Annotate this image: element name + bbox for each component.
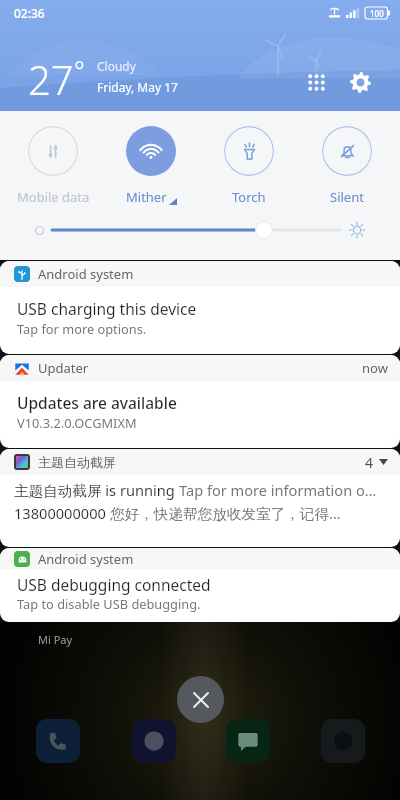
button[interactable]: 主题自动截屏 [0,449,400,547]
staticText: Tap for more information o… [179,480,377,500]
button[interactable]: Settings [342,64,378,100]
button[interactable]: Android system [0,261,400,354]
staticText: Android system [38,550,134,568]
staticText: V10.3.2.0.OCGMIXM [17,414,137,431]
staticText: Updates are available [17,392,177,413]
staticText: 27 [28,52,74,106]
staticText: 02:36 [14,5,45,21]
button[interactable]: Android system [0,548,400,622]
staticText: Tap for more options. [17,320,147,337]
button[interactable]: Mither [102,126,200,206]
button[interactable]: Silent [298,126,396,206]
staticText: Mi Pay [38,632,73,647]
staticText: Updater [38,359,89,377]
staticText: 您好，快递帮您放收发室了，记得… [110,503,341,523]
button[interactable]: App shortcut [36,719,80,763]
button[interactable]: Mobile data [4,126,102,206]
button[interactable]: App shortcut [321,719,365,763]
staticText: Cloudy [97,58,136,74]
staticText: 主题自动截屏 [38,454,116,470]
button[interactable]: App shortcut [132,719,176,763]
button[interactable]: App shortcut [226,719,270,763]
staticText: Android system [38,265,134,283]
button[interactable]: Updater [0,355,400,448]
staticText: 4 [365,453,374,472]
staticText: Silent [330,188,364,206]
staticText: Mither [126,188,167,206]
staticText: 13800000000 [14,503,110,523]
staticText: Mobile data [17,188,90,206]
staticText: USB debugging connected [17,574,211,595]
staticText: now [362,359,388,377]
button[interactable]: Shortcuts [298,64,334,100]
button[interactable]: Close notification shade [177,676,224,723]
button[interactable]: Torch [200,126,298,206]
staticText: Torch [232,188,266,206]
staticText: 100 [370,8,384,19]
staticText: Tap to disable USB debugging. [17,595,201,612]
staticText: USB charging this device [17,298,197,319]
staticText: ° [74,53,85,87]
staticText: 主题自动截屏 is running [14,480,179,500]
staticText: Friday, May 17 [97,79,178,95]
